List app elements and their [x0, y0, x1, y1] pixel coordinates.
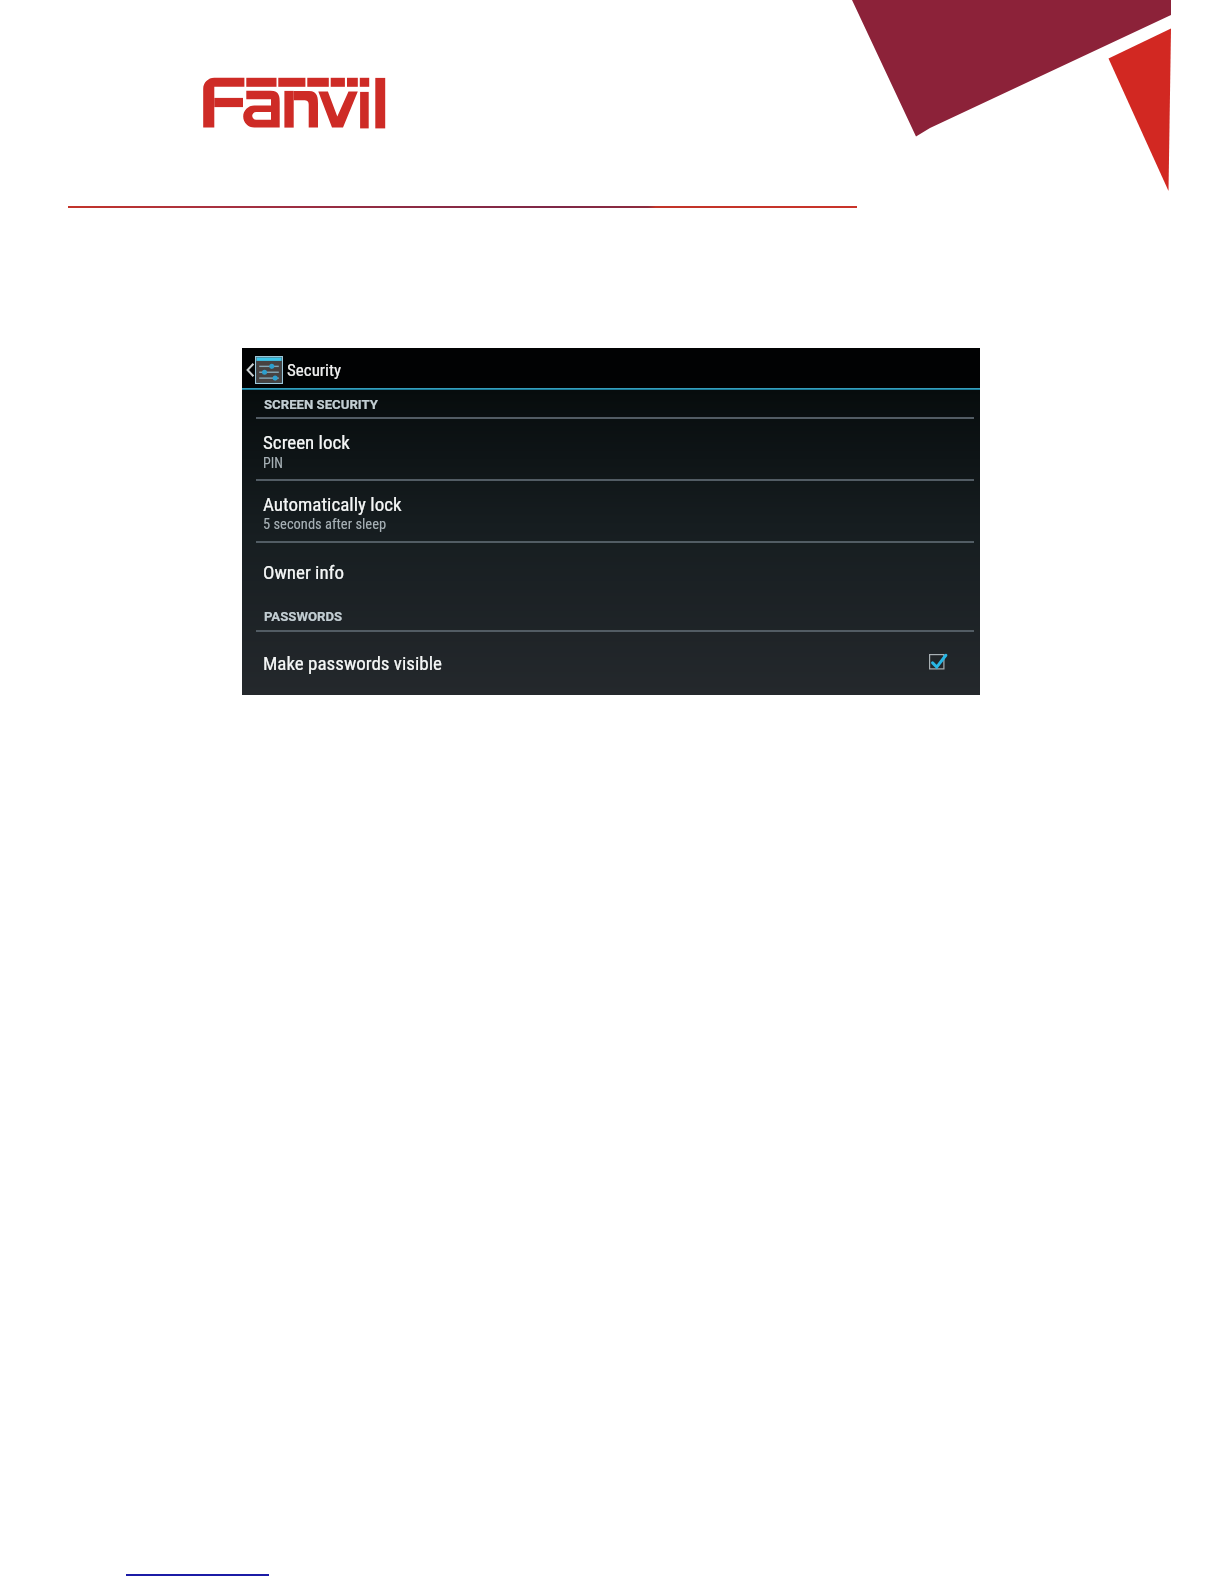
staticText: PASSWORDS [264, 609, 343, 624]
button[interactable]: Screen lock [242, 418, 980, 480]
staticText: Security [287, 360, 342, 380]
staticText: Owner info [263, 561, 345, 583]
button[interactable]: Owner info [242, 542, 980, 590]
staticText: 5 seconds after sleep [263, 516, 387, 533]
staticText: Automatically lock [263, 493, 402, 515]
staticText: Make passwords visible [263, 652, 442, 674]
staticText: SCREEN SECURITY [264, 397, 378, 412]
button[interactable]: Navigate up [242, 356, 259, 384]
button[interactable]: Settings [255, 356, 283, 384]
button[interactable]: Automatically lock [242, 480, 980, 542]
staticText: PIN [263, 455, 283, 471]
staticText: Screen lock [263, 431, 350, 453]
button[interactable]: Make passwords visible [242, 631, 980, 695]
